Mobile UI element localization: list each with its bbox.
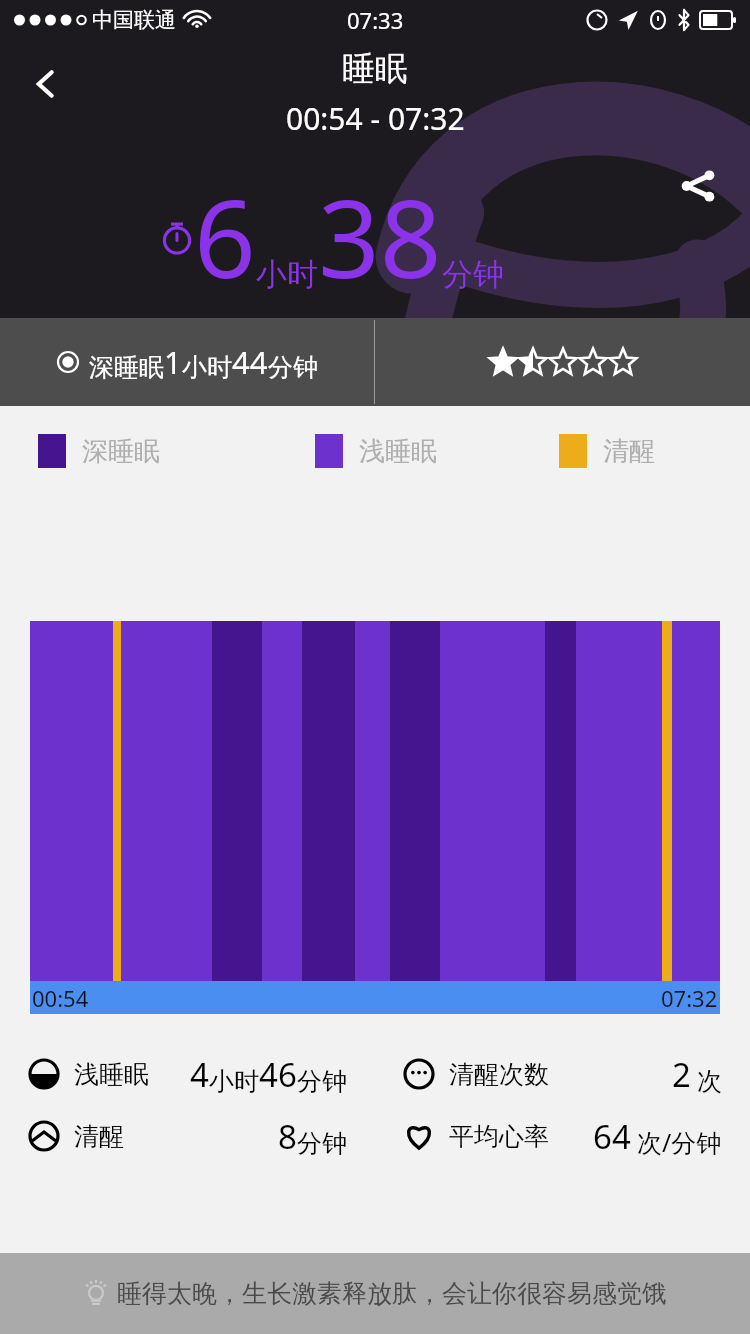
staticText: 睡眠	[342, 48, 408, 90]
staticText: 分钟	[268, 352, 318, 383]
button[interactable]: 清醒次数	[403, 1044, 722, 1104]
staticText: 00:54 - 07:32	[286, 98, 465, 139]
staticText: 小时	[209, 1066, 259, 1097]
staticText: 清醒	[74, 1121, 124, 1152]
staticText: 次/分钟	[637, 1125, 722, 1159]
staticText: 清醒	[603, 435, 655, 468]
staticText: 深睡眠	[82, 435, 160, 468]
staticText: 小时	[256, 255, 318, 294]
staticText: 2	[672, 1052, 691, 1097]
staticText: 平均心率	[449, 1121, 549, 1152]
staticText: 清醒次数	[449, 1059, 549, 1090]
staticText: 07:33	[347, 5, 404, 35]
staticText: 浅睡眠	[74, 1059, 149, 1090]
staticText: 分钟	[297, 1066, 347, 1097]
staticText: 8	[278, 1114, 297, 1159]
staticText: 深睡眠	[89, 352, 164, 383]
staticText: 38	[318, 163, 442, 310]
staticText: 6	[194, 163, 256, 310]
button[interactable]: 清醒	[28, 1106, 347, 1166]
staticText: 睡得太晚，生长激素释放肽，会让你很容易感觉饿	[117, 1278, 667, 1309]
button[interactable]: 睡得太晚，生长激素释放肽，会让你很容易感觉饿	[0, 1253, 750, 1334]
staticText: 次	[697, 1066, 722, 1097]
staticText: 00:54	[32, 983, 89, 1013]
staticText: 4	[190, 1052, 209, 1097]
staticText: 64	[593, 1114, 631, 1159]
staticText: 中国联通	[92, 7, 176, 33]
button[interactable]: 平均心率	[403, 1106, 722, 1166]
button[interactable]: Back	[16, 54, 76, 114]
staticText: 分钟	[297, 1128, 347, 1159]
staticText: 分钟	[442, 255, 504, 294]
staticText: 44	[232, 341, 268, 383]
staticText: 小时	[182, 352, 232, 383]
staticText: 46	[259, 1052, 297, 1097]
button[interactable]	[375, 318, 750, 406]
staticText: 1	[164, 341, 182, 383]
button[interactable]: 深睡眠	[0, 318, 374, 406]
button[interactable]: Sleep stages chart	[0, 621, 750, 981]
staticText: 浅睡眠	[359, 435, 437, 468]
staticText: 07:32	[661, 983, 718, 1013]
button[interactable]: Share	[670, 158, 726, 214]
button[interactable]: 浅睡眠	[28, 1044, 347, 1104]
